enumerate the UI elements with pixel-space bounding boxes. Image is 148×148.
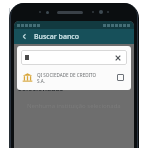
button[interactable]: QI SOCIEDADE DE CREDITO DIRETO bbox=[21, 69, 127, 86]
button[interactable]: Voltar bbox=[19, 31, 30, 42]
button[interactable]: Limpar bbox=[21, 50, 127, 65]
button[interactable]: Selecionar instituição bbox=[115, 72, 126, 83]
staticText: Selecionadas bbox=[18, 84, 64, 94]
button[interactable]: Limpar bbox=[113, 53, 123, 63]
staticText: QI SOCIEDADE DE CREDITO DIRETO bbox=[37, 72, 112, 78]
staticText: S.A. bbox=[37, 78, 45, 84]
staticText: Buscar banco bbox=[34, 32, 80, 42]
